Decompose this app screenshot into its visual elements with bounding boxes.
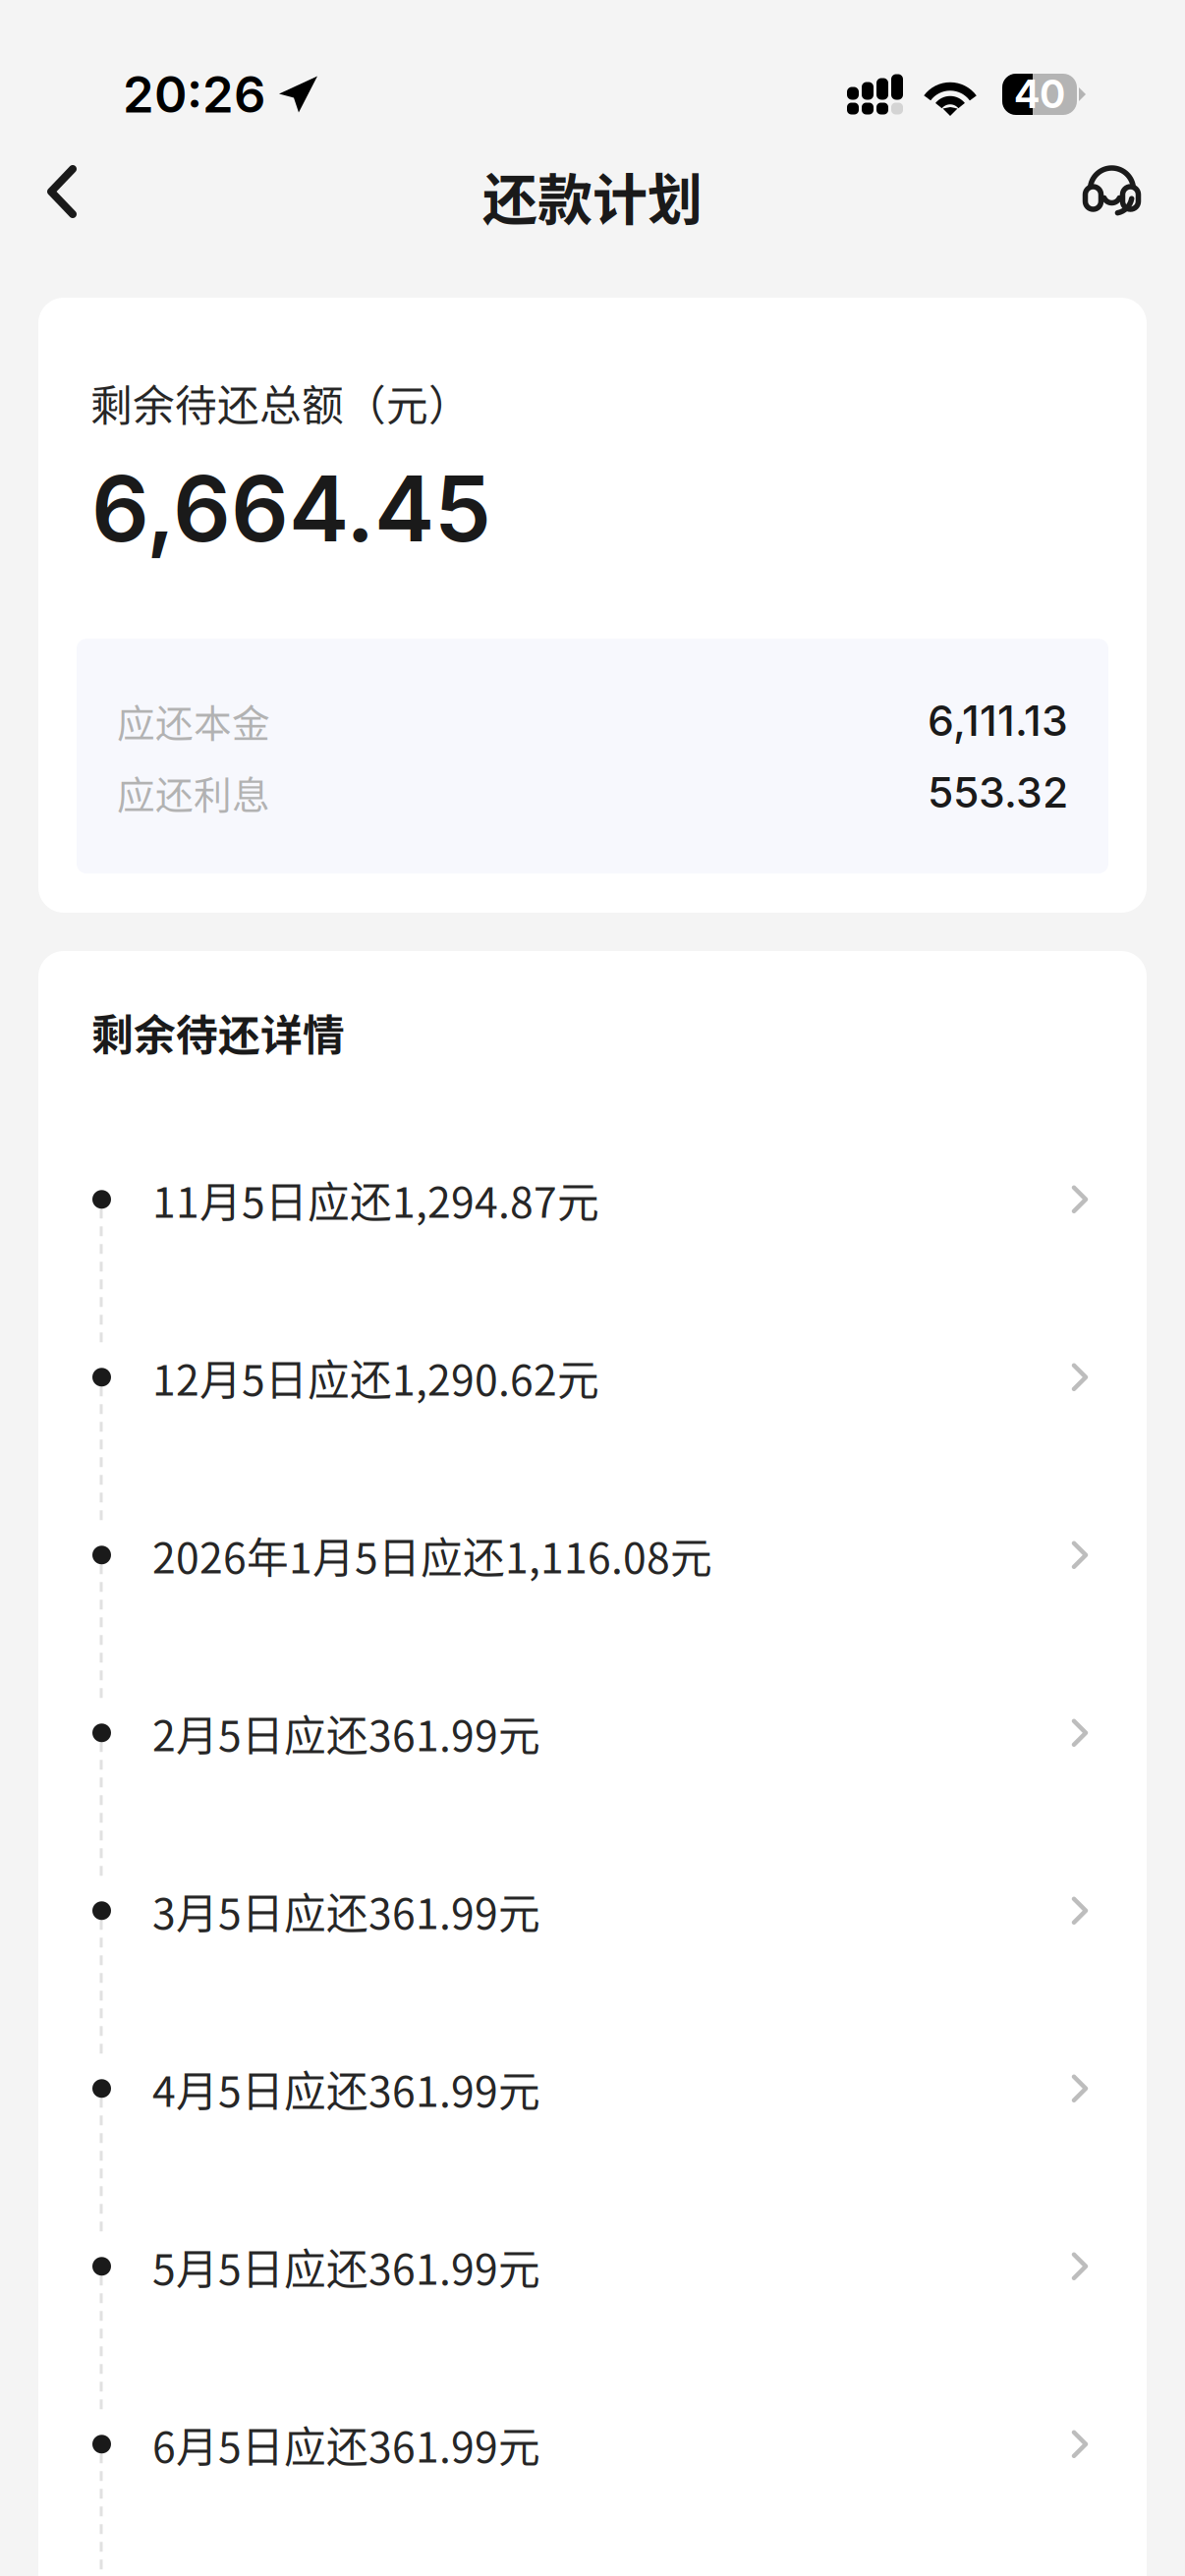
- staticText: 剩余待还总额（元）: [90, 372, 471, 433]
- staticText: 11月5日应还1,294.87元: [152, 1169, 599, 1230]
- staticText: 12月5日应还1,290.62元: [152, 1347, 599, 1408]
- staticText: 20:26: [123, 64, 265, 124]
- staticText: 3月5日应还361.99元: [152, 1880, 540, 1941]
- staticText: 2026年1月5日应还1,116.08元: [152, 1525, 712, 1585]
- button[interactable]: 6月5日应还361.99元: [38, 2385, 1147, 2563]
- button[interactable]: Back: [0, 134, 115, 250]
- button[interactable]: Customer service: [1048, 134, 1185, 250]
- button[interactable]: 12月5日应还1,290.62元: [38, 1318, 1147, 1496]
- button[interactable]: 4月5日应还361.99元: [38, 2030, 1147, 2207]
- button[interactable]: 2月5日应还361.99元: [38, 1674, 1147, 1852]
- staticText: 还款计划: [482, 156, 703, 235]
- staticText: 5月5日应还361.99元: [152, 2236, 540, 2297]
- staticText: 6,664.45: [91, 454, 491, 563]
- staticText: 553.32: [928, 767, 1068, 818]
- staticText: 6,111.13: [928, 695, 1068, 746]
- staticText: 应还利息: [117, 765, 270, 820]
- button[interactable]: 2026年1月5日应还1,116.08元: [38, 1496, 1147, 1674]
- staticText: 应还本金: [117, 693, 270, 748]
- staticText: 2月5日应还361.99元: [152, 1702, 540, 1763]
- staticText: 40: [1015, 71, 1065, 117]
- staticText: 6月5日应还361.99元: [152, 2414, 540, 2475]
- button[interactable]: 11月5日应还1,294.87元: [38, 1140, 1147, 1318]
- button[interactable]: 5月5日应还361.99元: [38, 2207, 1147, 2385]
- staticText: 剩余待还详情: [91, 1002, 345, 1063]
- staticText: 4月5日应还361.99元: [152, 2058, 540, 2119]
- button[interactable]: 3月5日应还361.99元: [38, 1852, 1147, 2030]
